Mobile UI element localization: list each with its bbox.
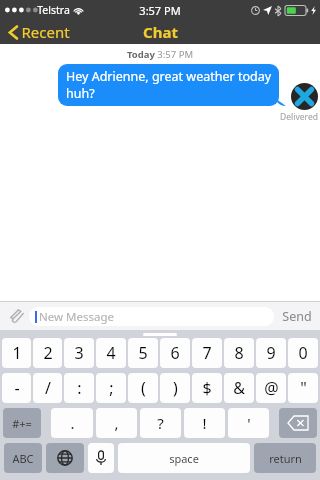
button[interactable]: ,	[96, 408, 137, 438]
staticText: "	[300, 377, 307, 399]
button[interactable]: $	[192, 373, 222, 403]
staticText: New Message	[39, 309, 114, 325]
button[interactable]: ABC	[4, 443, 42, 473]
staticText: /	[45, 377, 51, 399]
staticText: .	[70, 413, 75, 433]
button[interactable]: 7	[192, 338, 222, 368]
button[interactable]: Backspace	[279, 408, 317, 438]
button[interactable]: #+=	[3, 408, 41, 438]
button[interactable]	[143, 333, 177, 336]
staticText: Send	[282, 308, 312, 325]
staticText: 6	[170, 342, 180, 364]
button[interactable]: Dictate	[88, 443, 114, 473]
staticText: !	[202, 413, 207, 433]
staticText: 2	[43, 342, 53, 364]
staticText: 5	[138, 342, 148, 364]
button[interactable]: )	[160, 373, 190, 403]
button[interactable]: @	[256, 373, 286, 403]
button[interactable]: 4	[96, 338, 126, 368]
staticText: return	[269, 451, 302, 466]
staticText: :	[77, 377, 82, 399]
button[interactable]: Recent	[0, 20, 80, 44]
staticText: '	[247, 413, 251, 433]
staticText: Hey Adrienne, great weather today huh?	[66, 68, 272, 101]
button[interactable]: Attach	[6, 306, 26, 326]
button[interactable]: 2	[33, 338, 62, 368]
button[interactable]: 1	[2, 338, 31, 368]
staticText: 4	[106, 342, 116, 364]
staticText: ;	[109, 377, 114, 399]
button[interactable]: Contact avatar	[291, 83, 318, 110]
button[interactable]: -	[2, 373, 31, 403]
button[interactable]: !	[184, 408, 225, 438]
staticText: 7	[202, 342, 212, 364]
staticText: 9	[266, 342, 276, 364]
staticText: &	[233, 377, 245, 399]
button[interactable]: 8	[224, 338, 254, 368]
staticText: Recent	[21, 22, 70, 42]
staticText: Telstra	[37, 3, 70, 17]
button[interactable]: 0	[288, 338, 318, 368]
button[interactable]: (	[128, 373, 158, 403]
staticText: Chat	[143, 22, 178, 42]
button[interactable]: ?	[140, 408, 181, 438]
button[interactable]: 9	[256, 338, 286, 368]
staticText: $	[202, 377, 212, 399]
button[interactable]: "	[288, 373, 318, 403]
staticText: @	[264, 377, 279, 399]
button[interactable]: :	[64, 373, 94, 403]
button[interactable]: Change keyboard	[46, 443, 84, 473]
staticText: Today 3:57 PM	[127, 48, 194, 61]
button[interactable]: space	[118, 443, 250, 473]
button[interactable]: 3	[64, 338, 94, 368]
staticText: -	[14, 377, 20, 399]
staticText: )	[173, 377, 178, 399]
staticText: #+=	[12, 416, 32, 431]
button[interactable]: &	[224, 373, 254, 403]
staticText: (	[141, 377, 146, 399]
staticText: 3:57 PM	[139, 3, 181, 18]
button[interactable]: /	[33, 373, 62, 403]
button[interactable]: New Message	[29, 307, 274, 326]
staticText: Delivered	[280, 111, 318, 122]
button[interactable]: 5	[128, 338, 158, 368]
button[interactable]: Send	[280, 308, 314, 325]
staticText: 1	[12, 342, 22, 364]
button[interactable]: 6	[160, 338, 190, 368]
staticText: ,	[114, 413, 119, 433]
button[interactable]: return	[254, 443, 316, 473]
staticText: 8	[234, 342, 244, 364]
staticText: space	[169, 451, 199, 466]
staticText: 0	[298, 342, 308, 364]
button[interactable]: ;	[96, 373, 126, 403]
staticText: ABC	[12, 451, 34, 466]
staticText: 3	[74, 342, 84, 364]
button[interactable]: '	[228, 408, 269, 438]
staticText: ?	[157, 413, 164, 433]
button[interactable]: .	[51, 408, 93, 438]
